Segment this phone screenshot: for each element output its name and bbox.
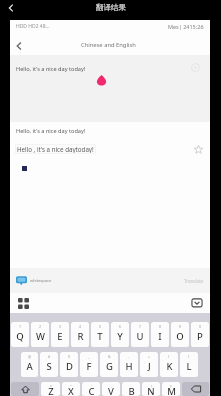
staticText: @ xyxy=(28,354,32,359)
staticText: * xyxy=(50,384,52,389)
staticText: 1 xyxy=(19,324,22,329)
staticText: M xyxy=(167,385,176,396)
staticText: L xyxy=(186,360,192,373)
staticText: HDD HD2 48... xyxy=(16,23,50,30)
button[interactable]: 5 xyxy=(91,322,109,347)
button[interactable]: 0 xyxy=(191,322,209,347)
staticText: P xyxy=(197,330,203,343)
staticText: F xyxy=(86,360,92,373)
staticText: A xyxy=(26,360,33,373)
staticText: ) xyxy=(188,354,190,359)
staticText: D xyxy=(66,360,73,373)
staticText: ' xyxy=(91,384,92,389)
staticText: O xyxy=(176,330,184,343)
staticText: Z xyxy=(48,385,54,396)
staticText: 0 xyxy=(199,324,202,329)
staticText: 7 xyxy=(139,324,142,329)
staticText: whitespace xyxy=(30,278,52,283)
button[interactable]: 3 xyxy=(51,322,69,347)
staticText: ? xyxy=(170,384,172,389)
button[interactable]: ( xyxy=(160,352,178,377)
staticText: & xyxy=(108,354,111,359)
staticText: 8 xyxy=(159,324,162,329)
staticText: B xyxy=(128,385,135,396)
staticText: _ xyxy=(88,354,90,359)
staticText: 翻译结果 xyxy=(96,3,126,12)
button[interactable]: Apps xyxy=(14,294,32,312)
staticText: I xyxy=(158,330,162,343)
staticText: E xyxy=(57,330,63,343)
button[interactable]: _ xyxy=(80,352,98,377)
button[interactable]: ! xyxy=(142,382,160,396)
staticText: S xyxy=(46,360,52,373)
button[interactable]: # xyxy=(40,352,58,377)
staticText: C xyxy=(88,385,95,396)
button[interactable]: whitespace xyxy=(16,275,52,286)
staticText: # xyxy=(48,354,51,359)
staticText: $ xyxy=(68,354,71,359)
staticText: K xyxy=(166,360,173,373)
staticText: + xyxy=(148,354,151,359)
button[interactable]: ) xyxy=(180,352,198,377)
button[interactable]: 9 xyxy=(171,322,189,347)
staticText: - xyxy=(128,354,130,359)
staticText: H xyxy=(125,360,133,373)
button[interactable]: 6 xyxy=(111,322,129,347)
button[interactable]: Favorite xyxy=(192,143,205,156)
staticText: V xyxy=(108,385,114,396)
button[interactable]: 1 xyxy=(11,322,29,347)
staticText: R xyxy=(77,330,84,343)
staticText: Mes| 2415:26 xyxy=(168,23,204,30)
button[interactable]: @ xyxy=(21,352,38,377)
staticText: 9 xyxy=(179,324,182,329)
staticText: T xyxy=(97,330,103,343)
button[interactable]: 2 xyxy=(31,322,49,347)
staticText: Hello, it's a nice day today! xyxy=(16,127,86,135)
staticText: J xyxy=(148,360,151,373)
staticText: ! xyxy=(151,384,152,389)
staticText: Y xyxy=(117,330,123,343)
staticText: Hello , it's a nice daytoday! xyxy=(17,145,94,153)
button[interactable]: Hide keyboard xyxy=(188,294,206,312)
button[interactable]: - xyxy=(120,352,138,377)
staticText: : xyxy=(111,384,112,389)
staticText: ( xyxy=(168,354,170,359)
button[interactable]: $ xyxy=(60,352,78,377)
staticText: 2 xyxy=(39,324,42,329)
button[interactable]: Translate xyxy=(184,278,204,284)
button[interactable]: Backspace xyxy=(182,382,209,396)
button[interactable]: & xyxy=(100,352,118,377)
staticText: 6 xyxy=(119,324,122,329)
button[interactable]: ; xyxy=(122,382,140,396)
button[interactable]: 8 xyxy=(151,322,169,347)
staticText: U xyxy=(136,330,144,343)
button[interactable]: 7 xyxy=(131,322,149,347)
button[interactable]: Shift xyxy=(11,382,39,396)
button[interactable]: * xyxy=(41,382,60,396)
button[interactable]: + xyxy=(140,352,158,377)
staticText: 4 xyxy=(79,324,82,329)
staticText: Chinese and English xyxy=(81,41,136,49)
staticText: 5 xyxy=(99,324,102,329)
button[interactable]: : xyxy=(102,382,120,396)
staticText: N xyxy=(147,385,155,396)
button[interactable]: Play audio xyxy=(190,62,201,73)
button[interactable]: Back xyxy=(10,37,28,55)
staticText: X xyxy=(68,385,74,396)
button[interactable]: " xyxy=(62,382,80,396)
staticText: G xyxy=(106,360,113,373)
button[interactable]: ? xyxy=(162,382,180,396)
staticText: W xyxy=(36,330,45,343)
staticText: " xyxy=(70,384,72,389)
button[interactable]: Back xyxy=(4,1,18,15)
button[interactable]: 4 xyxy=(71,322,89,347)
staticText: ; xyxy=(131,384,132,389)
staticText: Hello, it's a nice day today! xyxy=(16,65,86,73)
staticText: 3 xyxy=(59,324,62,329)
button[interactable]: ' xyxy=(82,382,100,396)
staticText: Q xyxy=(16,330,24,343)
